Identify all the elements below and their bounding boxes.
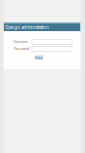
staticText: Password:	[14, 47, 30, 51]
button[interactable]: Log in	[35, 55, 43, 59]
staticText: Django administration	[5, 25, 49, 30]
staticText: Username:	[14, 40, 30, 44]
staticText: Log in	[36, 53, 42, 61]
